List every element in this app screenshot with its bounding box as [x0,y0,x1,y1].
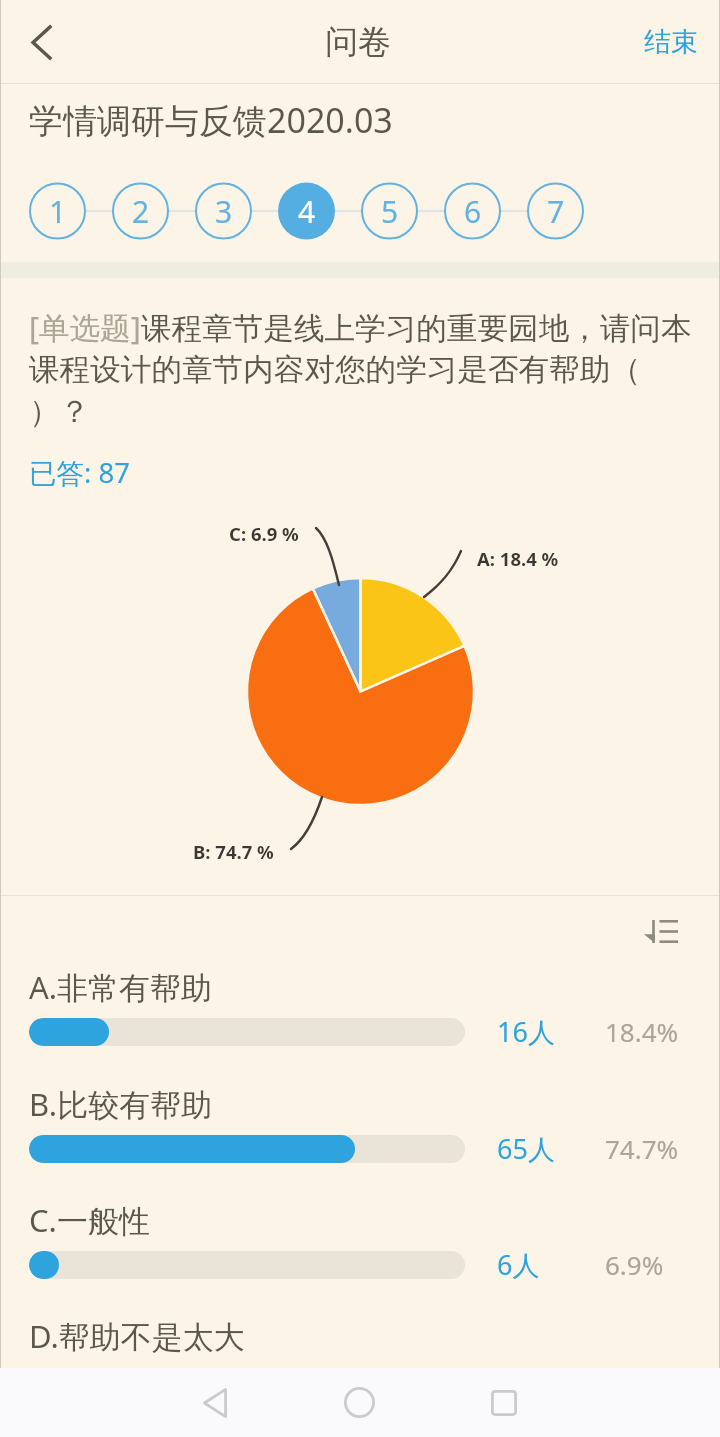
button[interactable]: 结束 [622,0,720,83]
staticText: B: 74.7 % [193,839,274,864]
button[interactable]: 3 [195,183,252,240]
staticText: A: 18.4 % [477,546,559,571]
staticText: 16人 [497,1013,555,1050]
button[interactable]: B.比较有帮助 [0,1081,720,1193]
button[interactable]: Back [0,0,80,83]
button[interactable]: 1 [29,183,86,240]
button[interactable]: Sort answers [635,908,687,954]
button[interactable]: D.帮助不是太大 [0,1311,720,1368]
staticText: 4 [298,191,316,232]
staticText: 6.9% [605,1247,664,1282]
staticText: 5 [381,191,399,232]
button[interactable]: 6 [444,183,501,240]
staticText: 3 [215,191,233,232]
button[interactable]: Recent apps [469,1368,538,1437]
staticText: 结束 [644,25,698,59]
staticText: 7 [547,191,565,232]
staticText: 74.7% [605,1131,679,1166]
staticText: A.非常有帮助 [29,966,213,1008]
staticText: C: 6.9 % [229,521,299,546]
button[interactable]: Back [180,1368,249,1437]
staticText: 18.4% [605,1014,679,1049]
staticText: [单选题]课程章节是线上学习的重要园地，请问本 课程设计的章节内容对您的学习是否… [29,306,720,431]
staticText: 1 [49,191,67,232]
staticText: B.比较有帮助 [29,1083,213,1125]
staticText: 2 [132,191,150,232]
staticText: 问卷 [325,21,391,63]
staticText: D.帮助不是太大 [29,1315,245,1357]
button[interactable]: 2 [112,183,169,240]
button[interactable]: 5 [361,183,418,240]
button[interactable]: A.非常有帮助 [0,964,720,1076]
button[interactable]: 7 [527,183,584,240]
staticText: 6 [464,191,482,232]
button[interactable]: 4 [278,183,335,240]
staticText: 6人 [497,1246,540,1283]
button[interactable]: C.一般性 [0,1197,720,1309]
staticText: 65人 [497,1130,555,1167]
staticText: C.一般性 [29,1199,150,1241]
button[interactable]: Home [325,1368,394,1437]
staticText: 已答: 87 [29,454,130,492]
staticText: 学情调研与反馈2020.03 [29,97,393,143]
